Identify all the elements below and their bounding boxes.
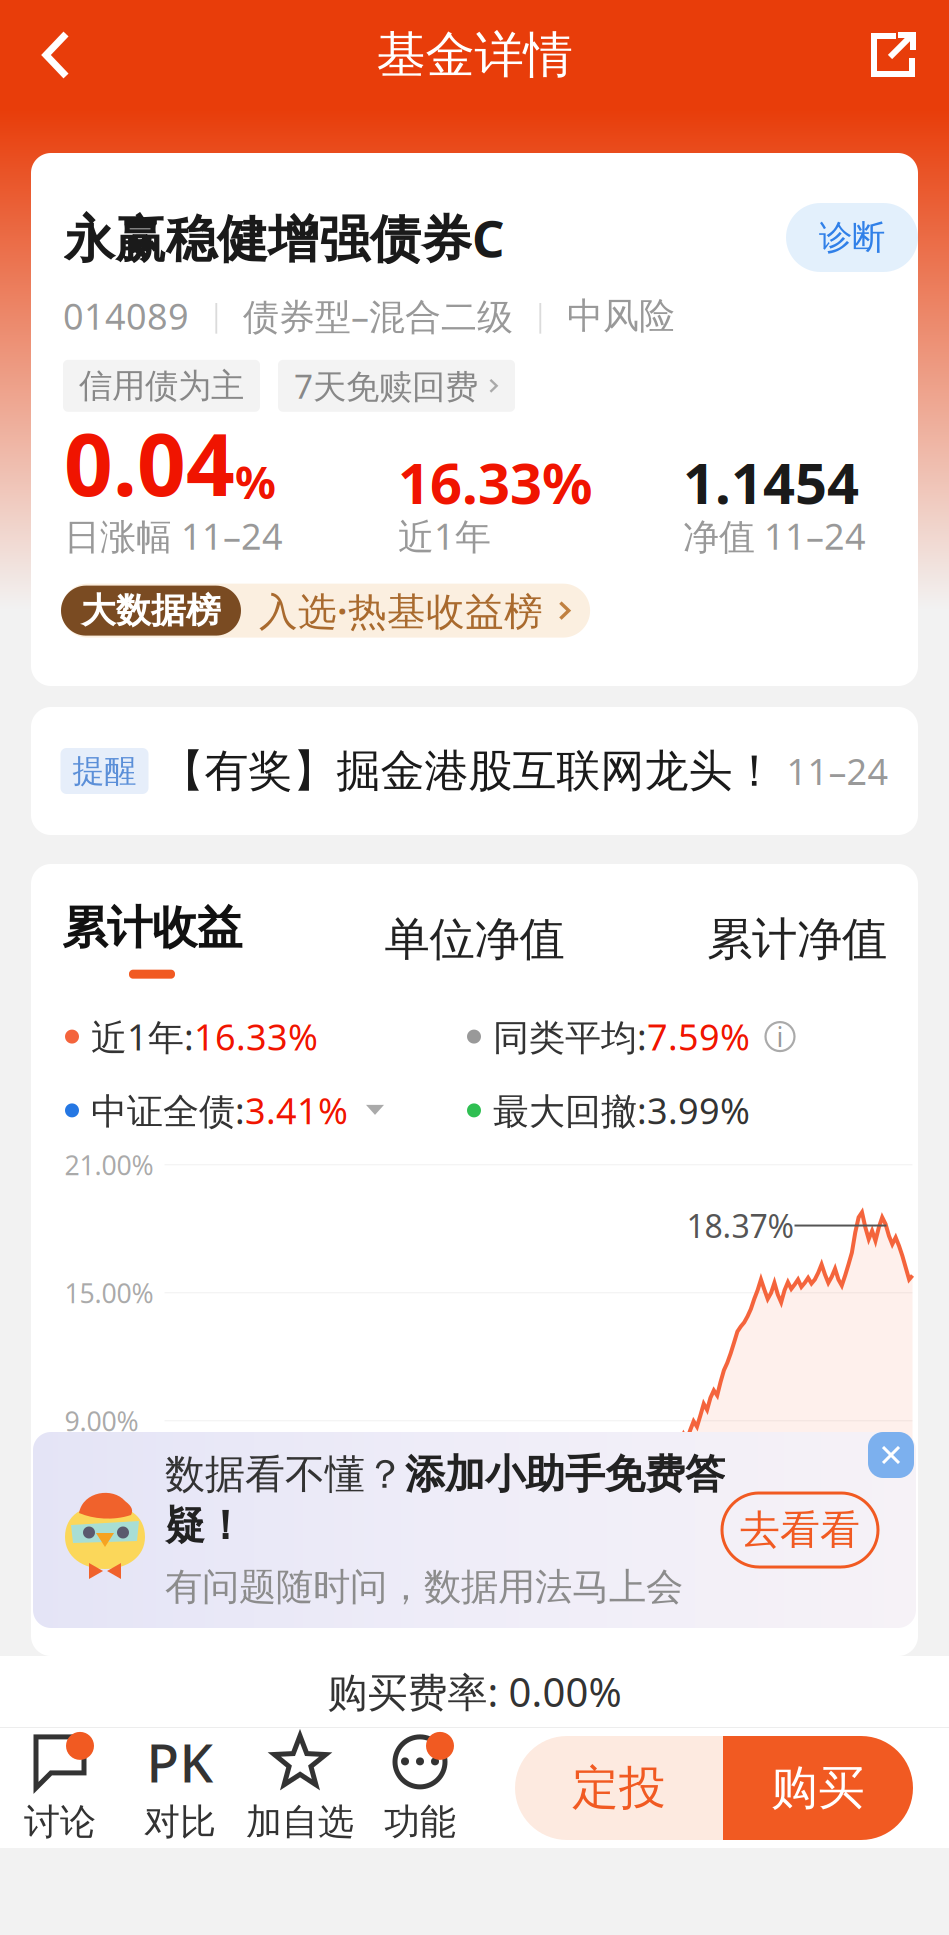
button[interactable]: 累计收益: [62, 900, 242, 979]
staticText: 基金详情: [376, 25, 572, 85]
staticText: 数据看不懂？: [165, 1450, 405, 1499]
staticText: 近1年: [398, 512, 491, 560]
button[interactable]: 定投: [515, 1736, 723, 1840]
staticText: 15.00%: [64, 1275, 153, 1310]
button[interactable]: Share: [837, 0, 949, 110]
staticText: 中证全债:: [91, 1086, 245, 1134]
button[interactable]: 单位净值: [384, 911, 564, 967]
staticText: 0.04: [64, 406, 235, 519]
staticText: 诊断: [819, 217, 885, 258]
staticText: 购买: [771, 1759, 865, 1817]
staticText: 7天免赎回费: [294, 364, 478, 408]
staticText: 16.33%: [194, 1013, 318, 1060]
staticText: 16.33%: [398, 445, 593, 519]
staticText: 【有奖】掘金港股互联网龙头！: [160, 744, 776, 798]
staticText: %: [235, 451, 276, 511]
staticText: 日涨幅 11–24: [64, 512, 283, 560]
staticText: 加自选: [246, 1800, 354, 1844]
button[interactable]: Back: [0, 0, 112, 110]
staticText: 21.00%: [64, 1147, 153, 1182]
staticText: 疑！: [165, 1501, 245, 1550]
button[interactable]: PK: [120, 1728, 240, 1848]
button[interactable]: 去看看: [722, 1493, 878, 1567]
staticText: 0.00%: [64, 1531, 138, 1566]
staticText: 永赢稳健增强债券C: [64, 204, 505, 271]
button[interactable]: 加自选: [240, 1728, 360, 1848]
staticText: 累计净值: [707, 911, 887, 967]
staticText: 单位净值: [384, 911, 564, 967]
staticText: 18.37%: [686, 1204, 794, 1247]
button[interactable]: 购买: [723, 1736, 913, 1840]
staticText: i: [776, 1019, 783, 1054]
staticText: 入选·热基收益榜: [259, 585, 543, 636]
button[interactable]: 诊断: [786, 203, 918, 272]
button[interactable]: 讨论: [0, 1728, 120, 1848]
staticText: 提醒: [72, 751, 136, 791]
button[interactable]: 累计净值: [707, 911, 887, 967]
staticText: 去看看: [740, 1505, 860, 1554]
staticText: 大数据榜: [81, 589, 221, 632]
staticText: 功能: [384, 1800, 456, 1844]
staticText: 3.41%: [245, 1086, 348, 1134]
staticText: 净值 11–24: [683, 512, 866, 560]
staticText: ｜: [201, 297, 231, 335]
staticText: 有问题随时问，数据用法马上会: [165, 1564, 683, 1610]
staticText: 7.59%: [647, 1013, 750, 1060]
staticText: 中风险: [567, 294, 675, 338]
staticText: 购买费率: 0.00%: [327, 1665, 621, 1718]
staticText: 同类平均:: [493, 1013, 647, 1060]
button[interactable]: 功能: [360, 1728, 480, 1848]
staticText: 添加小助手免费答: [405, 1450, 725, 1499]
staticText: 对比: [144, 1800, 216, 1844]
staticText: 累计收益: [62, 900, 242, 956]
button[interactable]: 7天免赎回费: [278, 360, 515, 412]
button[interactable]: 提醒: [31, 707, 918, 835]
staticText: PK: [146, 1726, 213, 1797]
staticText: 债券型–混合二级: [243, 292, 513, 340]
staticText: 1.1454: [683, 445, 859, 519]
staticText: 定投: [572, 1759, 666, 1817]
staticText: ｜: [525, 297, 555, 335]
staticText: 讨论: [24, 1800, 96, 1844]
staticText: 9.00%: [64, 1403, 138, 1438]
staticText: 014089: [63, 292, 189, 340]
staticText: 近1年:: [91, 1013, 194, 1060]
button[interactable]: Close: [868, 1432, 914, 1478]
staticText: 信用债为主: [79, 365, 244, 406]
staticText: 11–24: [786, 747, 888, 795]
staticText: 3.99%: [647, 1086, 750, 1134]
button[interactable]: 大数据榜: [61, 584, 590, 638]
staticText: 最大回撤:: [493, 1086, 647, 1134]
